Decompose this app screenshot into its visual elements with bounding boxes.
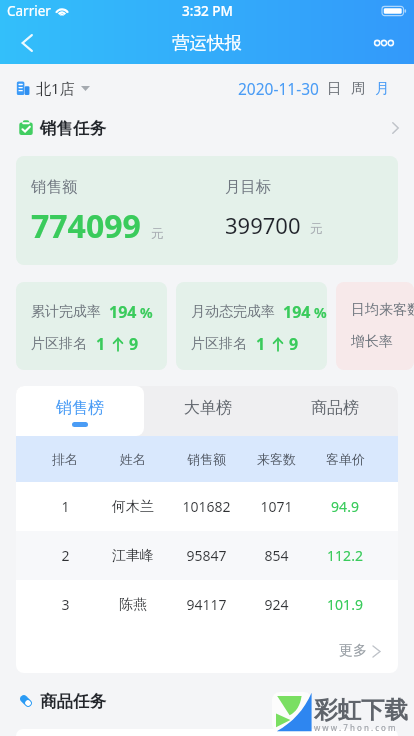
staticText: 194: [283, 301, 311, 323]
staticText: 排名: [52, 451, 78, 467]
staticText: 854: [264, 546, 289, 565]
staticText: 101.9: [327, 595, 363, 614]
staticText: 销售额: [187, 451, 226, 467]
button[interactable]: 大单榜: [144, 386, 271, 436]
button[interactable]: 月: [375, 79, 390, 97]
staticText: 北1店: [36, 78, 75, 98]
staticText: 大单榜: [184, 398, 232, 418]
button[interactable]: 日: [327, 79, 342, 97]
button[interactable]: 商品任务: [0, 685, 414, 717]
button[interactable]: 日均来客数: [336, 282, 414, 370]
button[interactable]: More options: [366, 25, 402, 61]
button[interactable]: 销售任务: [0, 112, 414, 144]
button[interactable]: 更多: [16, 629, 398, 673]
staticText: 营运快报: [172, 32, 242, 54]
staticText: 月动态完成率: [191, 303, 275, 321]
staticText: 2: [61, 546, 70, 565]
staticText: 924: [264, 595, 289, 614]
staticText: 增长率: [351, 333, 393, 351]
button[interactable]: 累计完成率: [16, 282, 167, 370]
staticText: 何木兰: [112, 498, 154, 516]
staticText: 累计完成率: [31, 303, 101, 321]
staticText: 来客数: [257, 451, 296, 467]
staticText: 销售额: [31, 177, 78, 197]
staticText: 江聿峰: [112, 547, 154, 565]
button[interactable]: 2020-11-30: [238, 78, 319, 99]
staticText: 101682: [182, 497, 231, 516]
button[interactable]: 周: [351, 79, 366, 97]
button[interactable]: 销售榜: [16, 386, 144, 436]
staticText: 3: [61, 595, 70, 614]
staticText: 姓名: [120, 451, 146, 467]
button[interactable]: 北1店: [16, 78, 90, 98]
staticText: 元: [151, 226, 164, 242]
button[interactable]: 商品榜: [271, 386, 398, 436]
staticText: 95847: [186, 546, 227, 565]
staticText: 1: [256, 333, 266, 355]
staticText: %: [140, 303, 153, 322]
staticText: 94117: [186, 595, 227, 614]
staticText: 194: [109, 301, 137, 323]
staticText: 销售榜: [56, 398, 104, 418]
button[interactable]: 月动态完成率: [176, 282, 327, 370]
staticText: 元: [310, 221, 323, 237]
staticText: 1071: [260, 497, 293, 516]
button[interactable]: Back: [9, 25, 45, 61]
staticText: 客单价: [326, 451, 365, 467]
staticText: 月目标: [225, 177, 272, 197]
staticText: 9: [129, 333, 139, 355]
button[interactable]: 1: [16, 482, 398, 531]
staticText: 94.9: [331, 497, 359, 516]
staticText: 1: [61, 497, 70, 516]
staticText: 彩虹下载: [314, 695, 408, 725]
staticText: 片区排名: [191, 335, 247, 353]
button[interactable]: 销售额: [16, 156, 398, 265]
staticText: 销售任务: [40, 118, 106, 139]
staticText: 商品任务: [40, 691, 106, 712]
staticText: %: [314, 303, 327, 322]
staticText: 日均来客数: [351, 301, 414, 319]
staticText: 774099: [31, 204, 141, 248]
staticText: 1: [96, 333, 106, 355]
staticText: 9: [289, 333, 299, 355]
button[interactable]: 3: [16, 580, 398, 629]
staticText: 陈燕: [119, 596, 147, 614]
button[interactable]: 2: [16, 531, 398, 580]
staticText: 片区排名: [31, 335, 87, 353]
staticText: Carrier: [7, 2, 51, 20]
staticText: 更多: [339, 642, 367, 660]
staticText: 商品榜: [311, 398, 359, 418]
staticText: w w w . 7 h o n . c o m: [314, 722, 396, 733]
staticText: 112.2: [327, 546, 363, 565]
staticText: 399700: [225, 210, 301, 240]
staticText: 3:32 PM: [182, 2, 233, 20]
